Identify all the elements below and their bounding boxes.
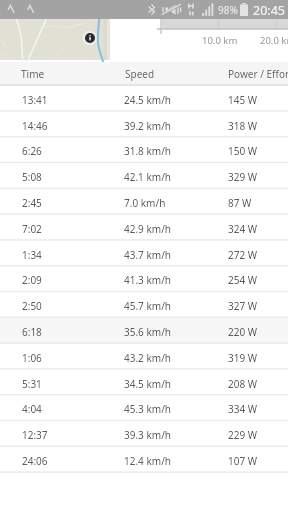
staticText: 45.7 km/h [124,299,172,313]
staticText: 6:18 [22,325,42,339]
staticText: 87 W [228,196,252,210]
staticText: 6:26 [22,144,42,158]
staticText: 12.4 km/h [124,454,172,468]
staticText: 43.2 km/h [124,351,172,365]
button[interactable]: 6:26 [0,137,288,163]
staticText: 34.5 km/h [124,377,172,391]
staticText: 1:06 [22,351,42,365]
staticText: 2:09 [22,273,42,287]
button[interactable]: 7:02 [0,215,288,241]
button[interactable]: 6:18 [0,318,288,344]
staticText: 327 W [228,299,258,313]
staticText: 98% [218,3,238,17]
staticText: 272 W [228,248,258,262]
staticText: 42.9 km/h [124,222,172,236]
staticText: 2:45 [22,196,42,210]
staticText: 24.5 km/h [124,93,172,107]
staticText: 13:41 [22,93,48,107]
button[interactable]: 2:45 [0,189,288,215]
button[interactable]: 24:06 [0,447,288,473]
staticText: 1:34 [22,248,42,262]
staticText: 7.0 km/h [124,196,166,210]
staticText: 107 W [228,454,258,468]
staticText: 329 W [228,170,258,184]
staticText: 229 W [228,428,258,442]
staticText: 5:31 [22,377,42,391]
staticText: 43.7 km/h [124,248,172,262]
staticText: 5:08 [22,170,42,184]
staticText: 254 W [228,273,258,287]
button[interactable]: 5:31 [0,370,288,396]
staticText: 39.2 km/h [124,119,172,133]
button[interactable]: 5:08 [0,163,288,189]
staticText: 35.6 km/h [124,325,172,339]
staticText: Time [21,67,45,81]
button[interactable]: 4:04 [0,395,288,421]
staticText: 208 W [228,377,258,391]
staticText: 150 W [228,144,258,158]
button[interactable]: 14:46 [0,112,288,138]
button[interactable]: 13:41 [0,86,288,112]
staticText: Power / Effort [228,67,288,81]
staticText: 39.3 km/h [124,428,172,442]
staticText: 42.1 km/h [124,170,172,184]
button[interactable]: 2:09 [0,266,288,292]
button[interactable]: 12:37 [0,421,288,447]
staticText: 41.3 km/h [124,273,172,287]
staticText: 7:02 [22,222,42,236]
staticText: Speed [125,67,155,81]
staticText: 31.8 km/h [124,144,172,158]
staticText: 4:04 [22,402,42,416]
staticText: 20:45 [253,2,285,19]
staticText: 2:50 [22,299,42,313]
staticText: 20.0 km [260,34,288,47]
button[interactable]: Time [0,62,288,86]
staticText: 12:37 [22,428,48,442]
button[interactable]: 1:06 [0,344,288,370]
staticText: 14:46 [22,119,48,133]
staticText: 319 W [228,351,258,365]
staticText: 334 W [228,402,258,416]
staticText: 318 W [228,119,258,133]
staticText: 10.0 km [202,34,238,47]
button[interactable]: Map info [85,33,95,43]
staticText: 145 W [228,93,258,107]
staticText: 24:06 [22,454,48,468]
button[interactable]: 1:34 [0,241,288,267]
staticText: 220 W [228,325,258,339]
button[interactable]: Route map [0,0,110,60]
staticText: 324 W [228,222,258,236]
staticText: 45.3 km/h [124,402,172,416]
button[interactable]: 2:50 [0,292,288,318]
